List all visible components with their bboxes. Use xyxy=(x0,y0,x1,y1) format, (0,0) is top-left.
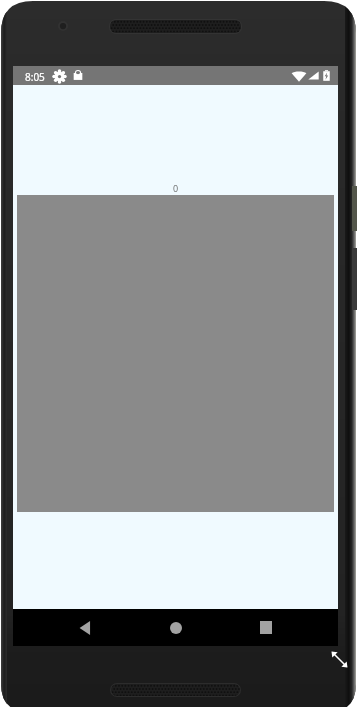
button[interactable]: Back xyxy=(49,609,121,646)
staticText: 8:05 xyxy=(25,70,45,84)
staticText: 0 xyxy=(13,182,338,194)
button[interactable]: Recents xyxy=(230,609,302,646)
button[interactable]: Home xyxy=(140,609,212,646)
